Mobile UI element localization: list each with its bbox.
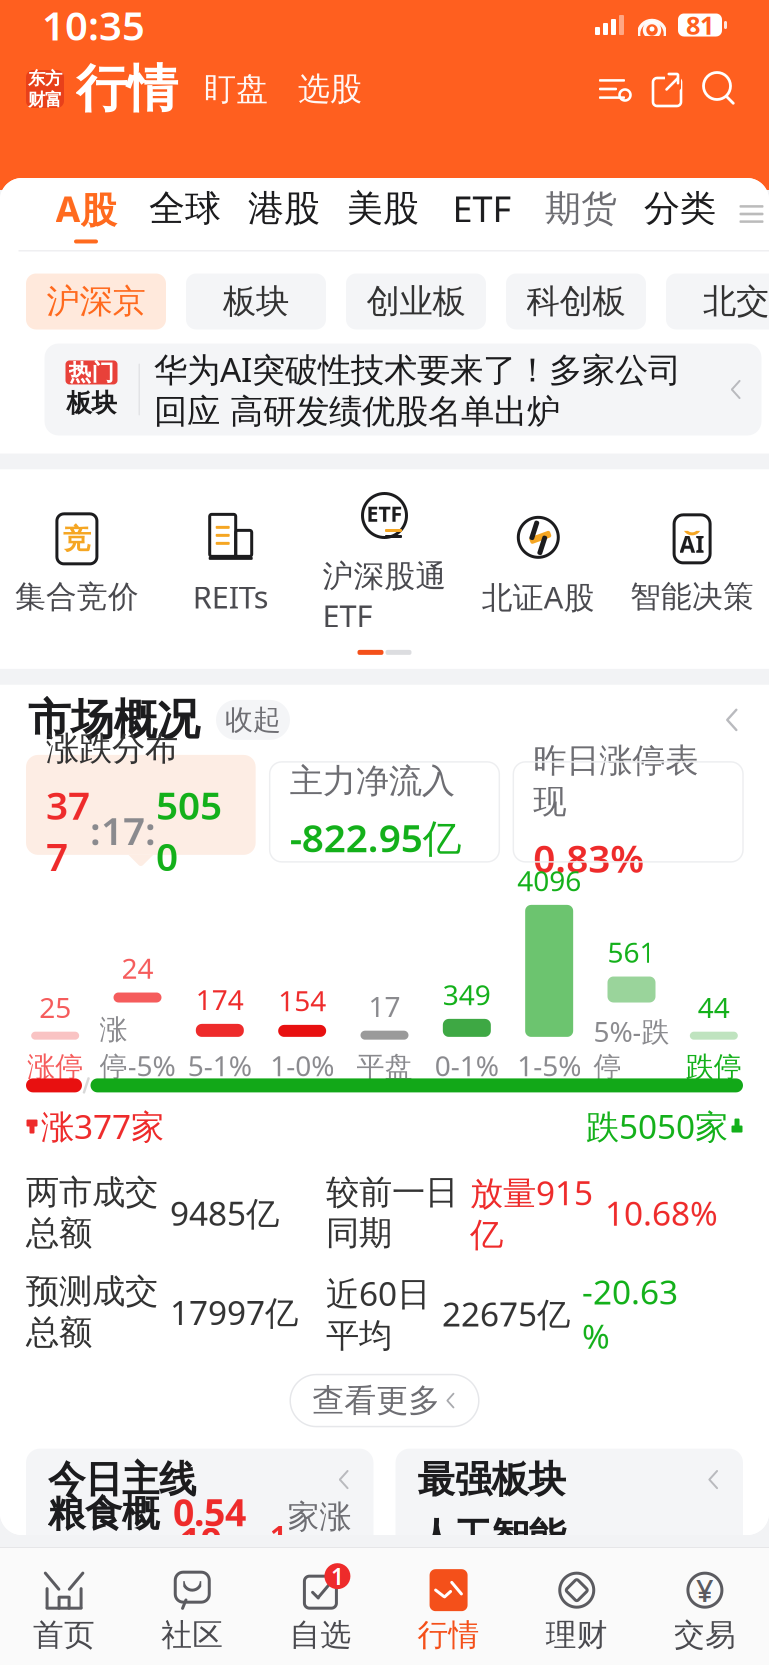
staticText: 智能决策 (630, 578, 754, 616)
staticText: 1 (269, 1515, 287, 1558)
button[interactable]: 昨日涨停表现 (513, 762, 743, 862)
button[interactable]: 全部分类 (729, 187, 769, 241)
staticText: 板块 (66, 387, 116, 418)
staticText: 自选 (289, 1616, 351, 1654)
button[interactable]: 筛选设置 (593, 67, 637, 111)
staticText: 两市成交总额 (26, 1172, 158, 1254)
staticText: 市场概况 (28, 694, 200, 746)
button[interactable]: 主力净流入 (270, 762, 499, 862)
staticText: 0.83% (533, 832, 644, 883)
button[interactable]: ETF (432, 177, 531, 251)
button[interactable]: 今日主线 (26, 1449, 373, 1613)
staticText: 沪深股通ETF (322, 557, 446, 636)
button[interactable]: 板块 (186, 273, 326, 329)
staticText: : (90, 805, 101, 856)
staticText: 昨日涨停表现 (533, 740, 698, 822)
button[interactable]: 期货 (531, 178, 630, 250)
button[interactable]: 选股 (292, 63, 368, 115)
staticText: 44 (698, 988, 730, 1026)
staticText: 154 (278, 982, 326, 1019)
button[interactable]: AI (615, 512, 769, 616)
button[interactable]: 盯盘 (198, 63, 274, 115)
staticText: 24 (121, 949, 153, 986)
button[interactable]: 热门 (44, 343, 761, 435)
staticText: 首页 (33, 1616, 95, 1654)
staticText: 板块 (223, 281, 289, 322)
staticText: 美股 (347, 186, 419, 231)
staticText: 19.98% (180, 1516, 232, 1659)
staticText: 涨跌分布 (46, 728, 178, 769)
button[interactable]: 最强板块 (395, 1449, 743, 1613)
button[interactable]: 北交 (666, 273, 769, 329)
staticText: 1 (331, 1561, 344, 1591)
staticText: 17997亿 (170, 1290, 298, 1334)
button[interactable]: 北证A股 (461, 510, 615, 617)
button[interactable]: 市场概况 (0, 685, 769, 755)
staticText: 较前一日同期 (326, 1172, 458, 1254)
staticText: 22675亿 (442, 1291, 570, 1336)
staticText: 华为AI突破性技术要来了！多家公司回应 高研发绩优股名单出炉 (154, 347, 681, 432)
staticText: 东方 (28, 68, 62, 89)
button[interactable]: 行情 (384, 1558, 513, 1654)
button[interactable]: ETF (308, 491, 461, 636)
staticText: 人工智能 (417, 1514, 565, 1559)
staticText: 跌停 (686, 1050, 742, 1084)
staticText: 分类 (644, 186, 716, 231)
staticText: 5-1% (188, 1047, 252, 1084)
staticText: 1-0% (270, 1047, 334, 1084)
staticText: 10:35 (42, 0, 145, 51)
staticText: 4096 (517, 862, 581, 899)
button[interactable]: 社区 (128, 1558, 256, 1654)
staticText: 17 (368, 987, 400, 1025)
staticText: 期货 (545, 186, 617, 231)
button[interactable]: 首页 (0, 1558, 128, 1654)
staticText: 561 (607, 933, 655, 970)
staticText: 收起 (225, 703, 281, 737)
staticText: 科创板 (526, 281, 625, 322)
staticText: 5050 (156, 779, 222, 882)
staticText: A股 (55, 184, 116, 232)
button[interactable]: 1 (256, 1558, 384, 1654)
button[interactable]: 竞 (0, 512, 154, 616)
button[interactable]: 港股 (234, 178, 333, 250)
staticText: AI (680, 529, 705, 559)
button[interactable]: 查看更多 (290, 1375, 479, 1427)
staticText: 查看更多 (312, 1381, 440, 1420)
staticText: -20.63% (582, 1269, 678, 1358)
staticText: ETF (366, 499, 402, 528)
button[interactable]: 搜索 (695, 65, 743, 113)
staticText: 主力净流入 (290, 761, 455, 802)
button[interactable]: REITs (154, 510, 308, 617)
button[interactable]: 全球 (135, 178, 234, 250)
button[interactable]: 分享 (643, 65, 691, 113)
button[interactable]: 创业板 (346, 273, 486, 329)
staticText: 最强板块 (417, 1457, 565, 1502)
staticText: 集合竞价 (15, 578, 139, 616)
staticText: 选股 (298, 69, 362, 109)
button[interactable]: 理财 (513, 1558, 641, 1654)
staticText: 放量915亿 (470, 1170, 593, 1255)
staticText: 5%-跌停 (593, 1012, 669, 1084)
button[interactable]: 科创板 (506, 273, 646, 329)
staticText: 349 (443, 976, 491, 1013)
staticText: 10.68% (605, 1191, 718, 1235)
button[interactable]: A股 (36, 176, 135, 251)
staticText: 今日首板 (289, 1555, 343, 1620)
button[interactable]: ¥ (641, 1558, 769, 1654)
button[interactable]: 美股 (333, 178, 432, 250)
staticText: 交易 (674, 1616, 736, 1654)
staticText: 北证A股 (482, 576, 595, 617)
staticText: 涨停-5% (99, 1012, 175, 1084)
button[interactable]: 沪深京 (26, 273, 166, 329)
staticText: 涨停 (27, 1050, 83, 1084)
staticText: 0-1% (435, 1047, 499, 1084)
staticText: 财富 (28, 89, 62, 110)
staticText: 竞 (63, 522, 91, 556)
staticText: REITs (193, 576, 269, 617)
button[interactable]: 分类 (630, 178, 729, 250)
staticText: 沪深京 (46, 281, 145, 322)
staticText: 1-5% (517, 1047, 581, 1084)
staticText: 174 (196, 981, 244, 1018)
staticText: 社区 (161, 1616, 223, 1654)
staticText: 全球 (149, 186, 221, 231)
